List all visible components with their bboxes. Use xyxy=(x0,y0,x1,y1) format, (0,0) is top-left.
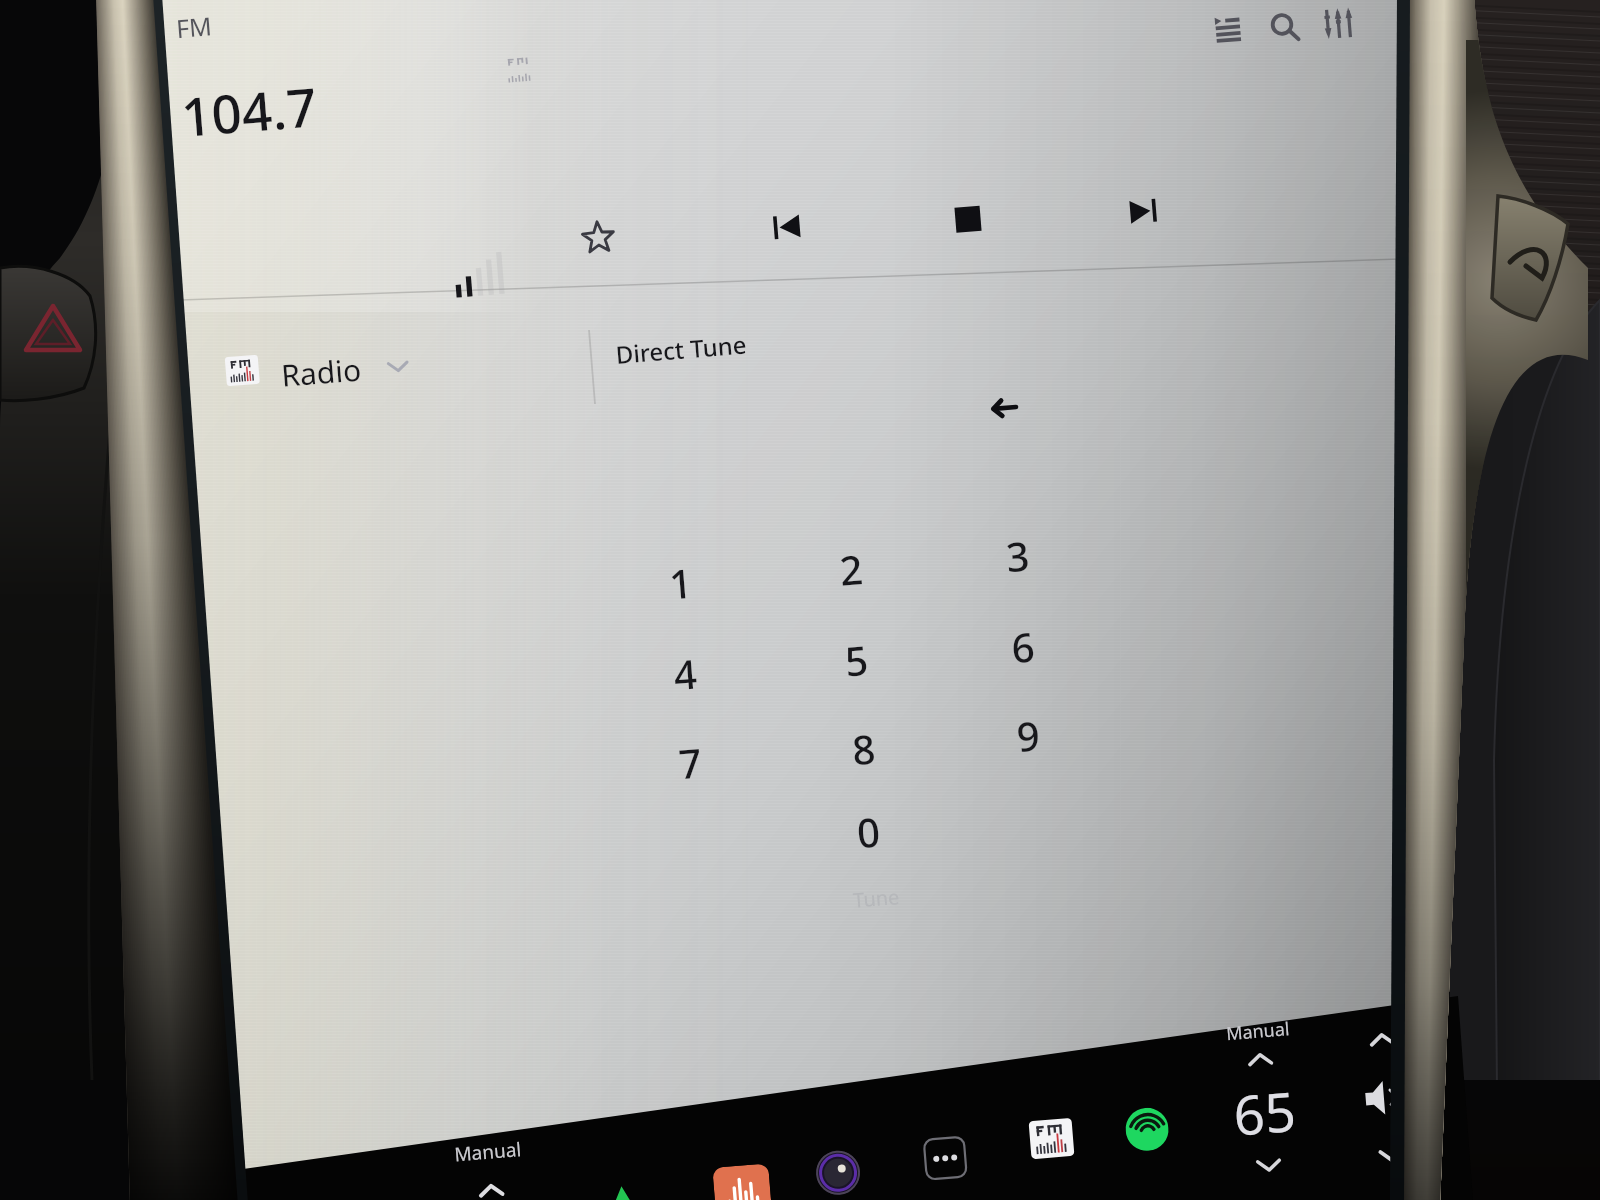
button[interactable]: 0 xyxy=(829,792,906,870)
button[interactable]: 7 xyxy=(651,724,728,801)
button[interactable]: 2 xyxy=(812,530,889,608)
button[interactable]: Spotify xyxy=(1124,1106,1170,1152)
staticText: Tune xyxy=(852,883,901,914)
staticText: Manual xyxy=(1225,1016,1291,1046)
button[interactable]: Audio player xyxy=(712,1163,773,1200)
button[interactable]: Backspace xyxy=(972,377,1034,439)
staticText: 0 xyxy=(855,803,882,859)
staticText: 6 xyxy=(1009,618,1037,674)
staticText: 1 xyxy=(667,555,694,610)
button[interactable]: 9 xyxy=(989,696,1066,774)
button[interactable]: Tune xyxy=(828,871,924,924)
button[interactable]: Previous xyxy=(754,195,818,259)
button[interactable]: Manual xyxy=(1225,1016,1302,1184)
button[interactable]: FM xyxy=(175,8,213,45)
button[interactable]: FM radio xyxy=(1028,1118,1076,1165)
button[interactable]: 4 xyxy=(646,635,723,712)
button[interactable]: 104.7 xyxy=(178,69,320,152)
button[interactable]: Stop xyxy=(936,187,1000,252)
staticText: 7 xyxy=(676,734,704,790)
button[interactable]: Playlist xyxy=(1197,0,1258,59)
button[interactable]: 6 xyxy=(984,607,1061,685)
button[interactable]: Audio settings xyxy=(1308,0,1369,53)
button[interactable]: Volume xyxy=(1354,1021,1420,1174)
button[interactable]: Favorite xyxy=(566,206,631,270)
staticText: Radio xyxy=(280,348,363,396)
staticText: 3 xyxy=(1004,528,1031,583)
button[interactable]: More apps xyxy=(924,1137,967,1180)
button[interactable]: 5 xyxy=(817,621,895,698)
button[interactable]: 8 xyxy=(824,710,902,787)
button[interactable]: Search xyxy=(1254,0,1315,57)
button[interactable]: Radio xyxy=(280,344,413,396)
button[interactable]: Navigate xyxy=(599,1182,647,1200)
staticText: 8 xyxy=(850,720,877,776)
staticText: Manual xyxy=(453,1136,522,1167)
staticText: 4 xyxy=(671,646,699,701)
staticText: 2 xyxy=(837,541,865,597)
button[interactable]: Next xyxy=(1112,179,1176,243)
button[interactable]: Dashcam xyxy=(814,1149,862,1196)
button[interactable]: 3 xyxy=(978,517,1056,594)
button[interactable]: Direct Tune xyxy=(614,327,748,371)
button[interactable]: 1 xyxy=(641,544,719,621)
staticText: 65 xyxy=(1231,1073,1298,1152)
staticText: 9 xyxy=(1014,707,1042,763)
button[interactable]: Manual xyxy=(453,1136,525,1200)
staticText: 5 xyxy=(843,632,870,687)
